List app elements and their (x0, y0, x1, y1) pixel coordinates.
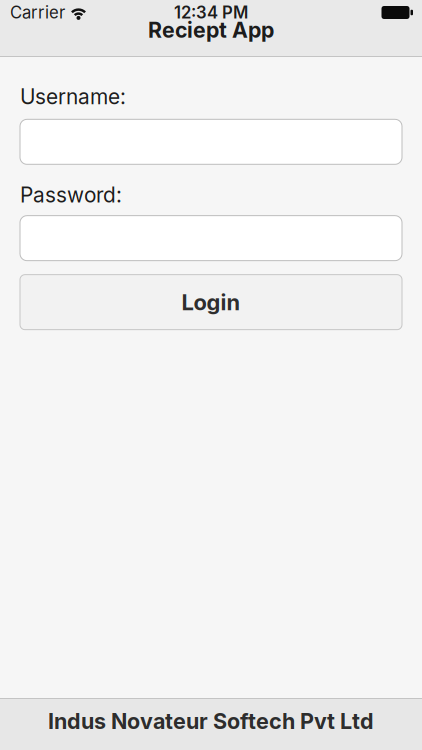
button[interactable]: Password (0, 216, 422, 261)
staticText: Indus Novateur Softech Pvt Ltd (48, 708, 374, 734)
staticText: 12:34 PM (174, 2, 248, 23)
staticText: Carrier (10, 2, 65, 23)
staticText: Login (181, 289, 240, 315)
staticText: Username: (20, 84, 126, 109)
staticText: Password: (20, 182, 122, 208)
button[interactable]: Username (0, 119, 422, 164)
staticText: Reciept App (148, 17, 274, 43)
button[interactable]: Login (0, 275, 422, 330)
